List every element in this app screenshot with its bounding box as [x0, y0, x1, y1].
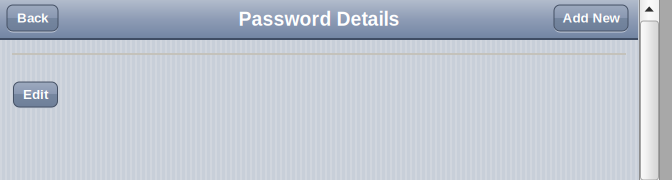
button[interactable]: Back	[7, 5, 58, 31]
button[interactable]: Edit	[13, 82, 57, 107]
staticText: Edit	[23, 87, 48, 102]
staticText: Add New	[562, 11, 619, 25]
button[interactable]: Add New	[554, 5, 628, 31]
staticText: Back	[17, 11, 48, 25]
staticText: Password Details	[238, 8, 399, 30]
